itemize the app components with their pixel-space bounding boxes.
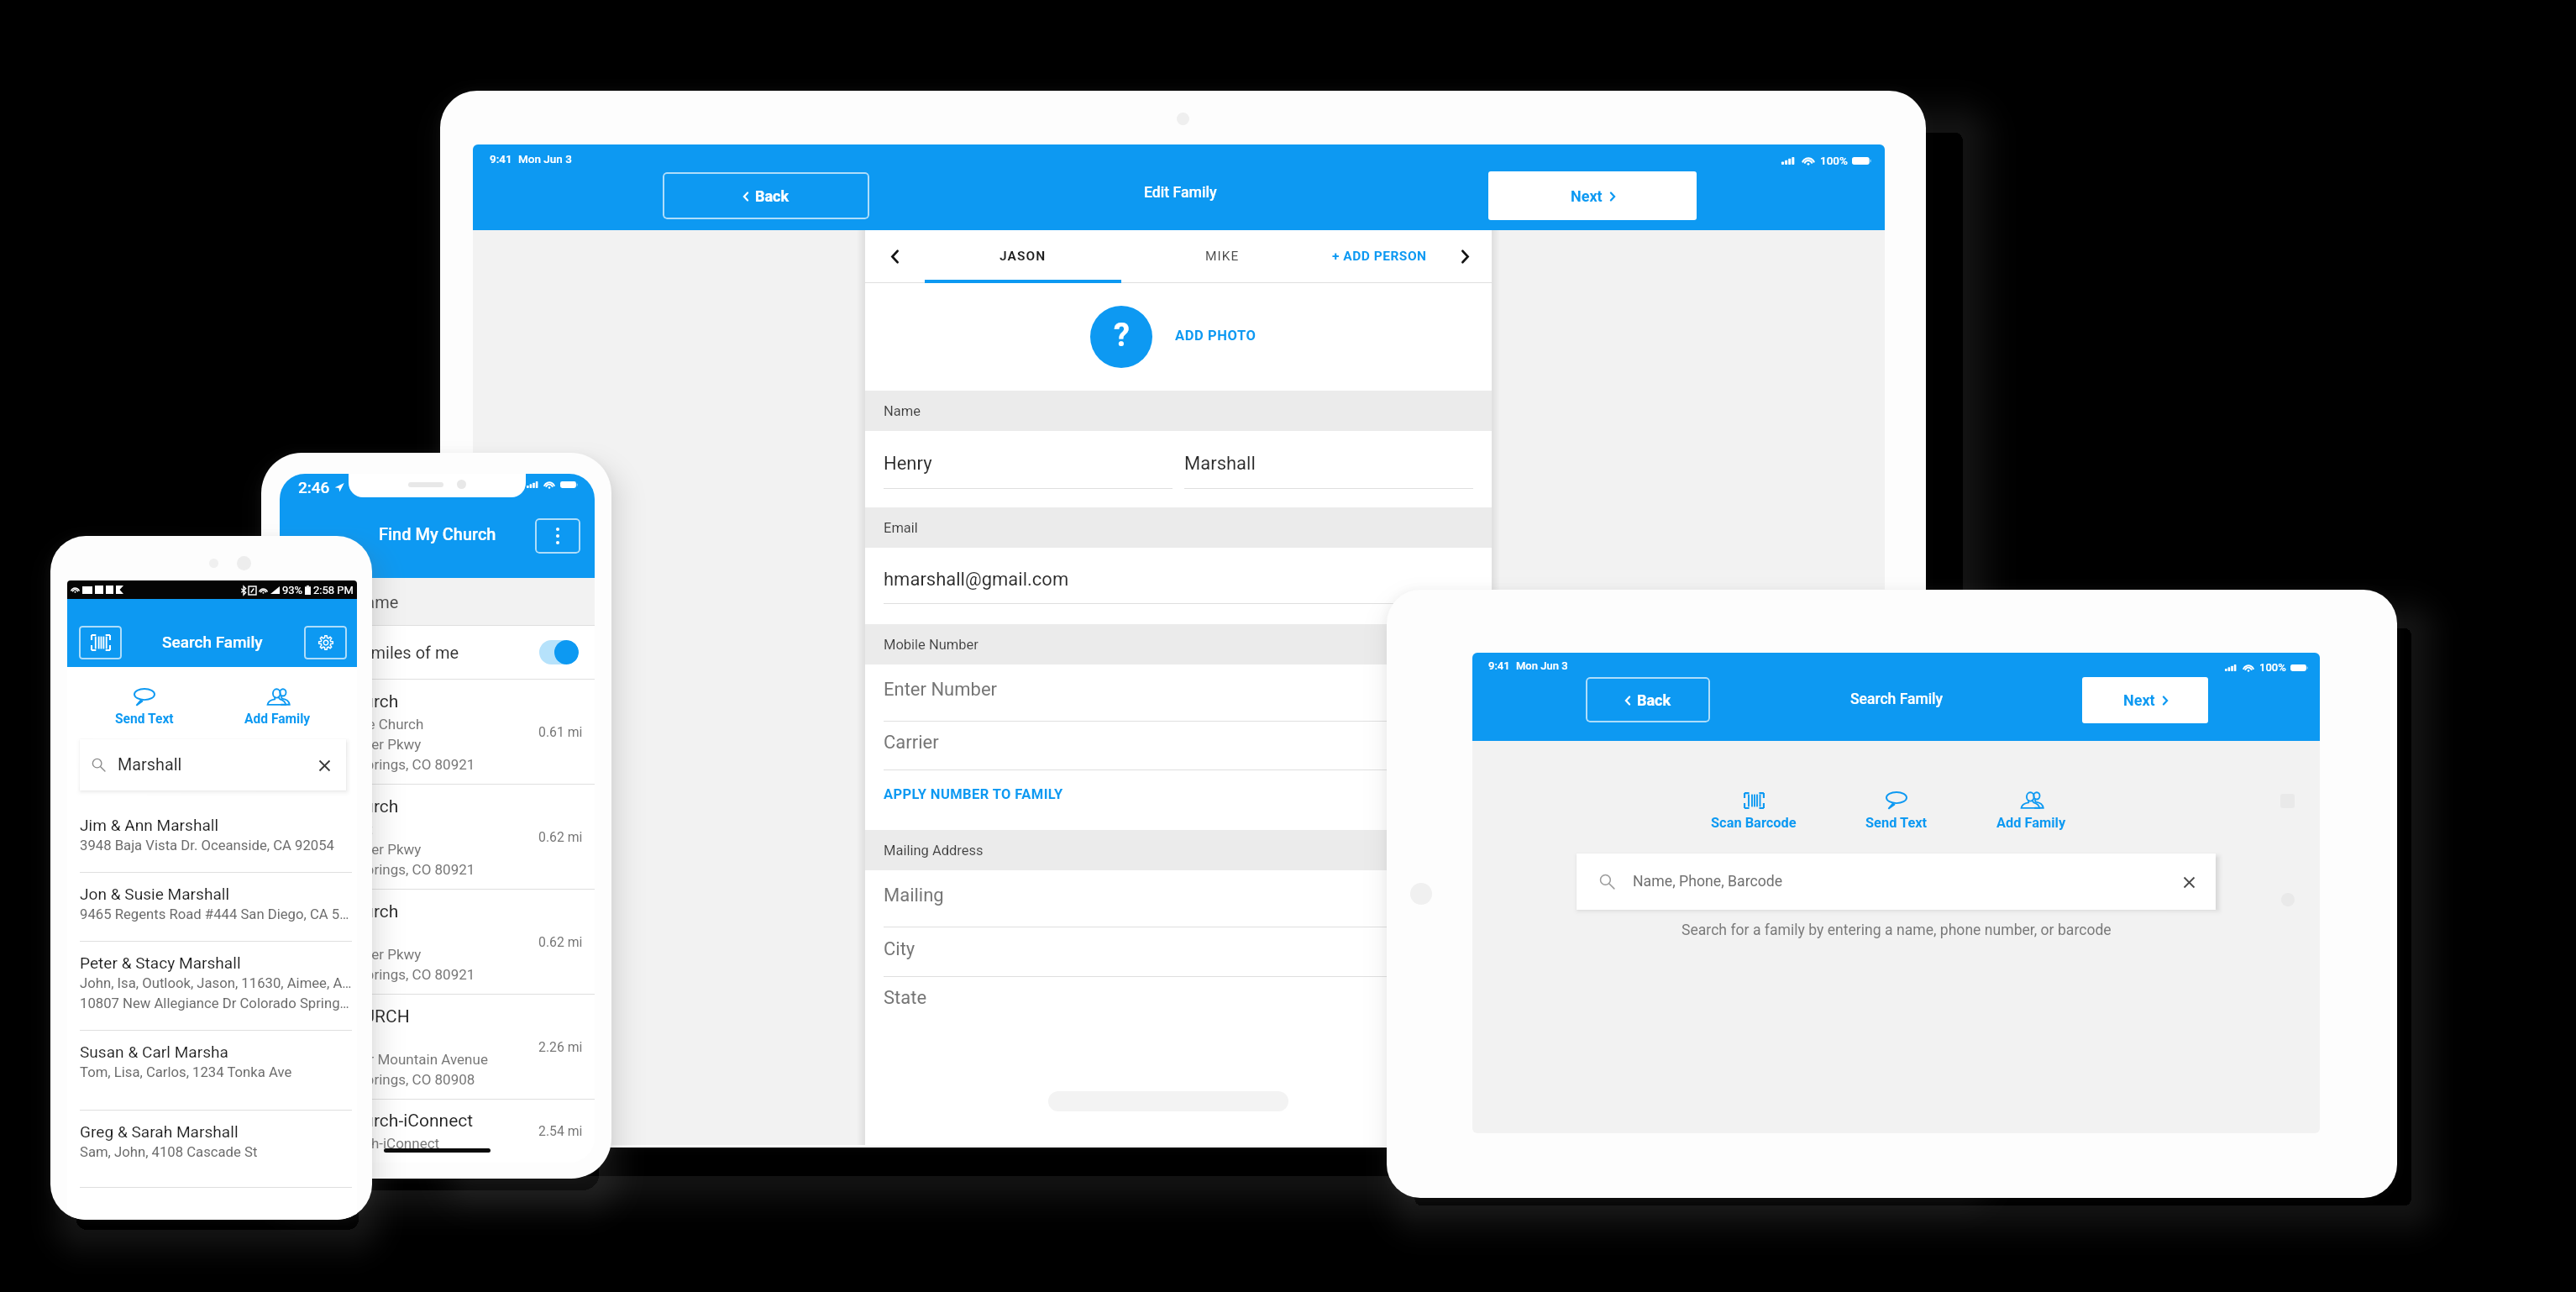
staticText: MIKE [1205, 249, 1240, 264]
staticText: Within 30 miles of me [296, 643, 459, 662]
staticText: 2:46 [298, 478, 330, 496]
staticText: JASON [999, 249, 1047, 264]
button[interactable]: Greg & Sarah Marshall [67, 1111, 357, 1188]
staticText: Search Family [162, 633, 263, 651]
staticText: Hope Church [296, 901, 399, 922]
staticText: + ADD PERSON [1332, 249, 1427, 264]
staticText: Henry [884, 453, 932, 475]
button[interactable]: Add Family [1990, 789, 2073, 833]
staticText: Greg & Sarah Marshall [80, 1122, 239, 1141]
staticText: Sam, John, 4108 Cascade St [80, 1144, 352, 1161]
button[interactable]: Next [2082, 677, 2208, 723]
staticText: Susan & Carl Marsha [80, 1043, 228, 1061]
staticText: Tom, Lisa, Carlos, 1234 Tonka Ave [80, 1064, 352, 1081]
staticText: Name, Phone, Barcode [1633, 873, 1783, 890]
staticText: Mon Jun 3 [518, 152, 572, 165]
button[interactable]: Susan & Carl Marsha [67, 1031, 357, 1111]
staticText: Next [1571, 187, 1603, 205]
staticText: The Chinese Church [296, 716, 424, 733]
staticText: Friday Night [296, 821, 373, 838]
staticText: 0.61 mi [538, 724, 583, 740]
button[interactable]: Add Family [238, 685, 317, 729]
staticText: Add Family [1996, 815, 2066, 831]
staticText: State [884, 987, 927, 1009]
button[interactable]: Marshall [80, 739, 346, 790]
button[interactable]: Send Text [1859, 789, 1934, 833]
button[interactable]: Scan barcode [79, 626, 122, 659]
staticText: Send Text [1865, 815, 1928, 831]
staticText: Mobile Number [884, 637, 978, 653]
button[interactable]: JASON [925, 230, 1121, 282]
staticText: Youth [296, 926, 333, 943]
button[interactable]: Peter & Stacy Marshall [67, 942, 357, 1031]
staticText: Mailing Address [884, 843, 984, 859]
staticText: Colorado Springs, CO 80908 [296, 1071, 475, 1088]
button[interactable]: Add photo [1090, 306, 1152, 368]
staticText: Marshall [1184, 453, 1256, 475]
staticText: Hope Church [296, 796, 399, 817]
button[interactable]: Clear [2177, 870, 2201, 894]
staticText: City [884, 938, 916, 960]
button[interactable]: Name, Phone, Barcode [1577, 853, 2216, 910]
staticText: Hope Church-iConnect [296, 1111, 474, 1132]
staticText: 3948 Baja Vista Dr. Oceanside, CA 92054 [80, 838, 352, 854]
staticText: NEW CHURCH [296, 1006, 410, 1027]
button[interactable]: + ADD PERSON [1312, 230, 1446, 282]
button[interactable]: MIKE [1134, 230, 1310, 282]
staticText: 9815 Voyager Pkwy [296, 736, 422, 753]
staticText: Scan Barcode [1711, 815, 1797, 831]
staticText: 93% [282, 584, 303, 596]
staticText: Back [1637, 691, 1671, 709]
button[interactable]: Scan Barcode [1704, 789, 1803, 833]
button[interactable]: Clear search [312, 754, 336, 777]
staticText: Carrier [884, 732, 939, 754]
staticText: 0.62 mi [538, 934, 583, 950]
staticText: John, Isa, Outlook, Jason, 11630, Aimee,… [80, 975, 352, 992]
staticText: 2.54 mi [538, 1123, 583, 1139]
staticText: Jim & Ann Marshall [80, 816, 219, 834]
staticText: 9815 Voyager Pkwy [296, 841, 422, 858]
button[interactable]: Send Text [108, 685, 181, 729]
button[interactable]: Previous person [875, 234, 914, 280]
staticText: Back [755, 187, 790, 205]
staticText: APPLY NUMBER TO FAMILY [884, 786, 1063, 802]
button[interactable]: APPLY NUMBER TO FAMILY [865, 770, 1492, 830]
staticText: 2.26 mi [538, 1039, 583, 1055]
staticText: Church Name [296, 592, 399, 612]
staticText: hmarshall@gmail.com [884, 569, 1069, 591]
staticText: Edit Family [1144, 184, 1217, 202]
staticText: Colorado Springs, CO 80921 [296, 966, 475, 983]
staticText: Colorado Springs, CO 80921 [296, 861, 475, 878]
button[interactable]: Next [1488, 171, 1697, 220]
staticText: Colorado Springs, CO 80921 [296, 756, 475, 773]
staticText: Search Family [1850, 691, 1944, 708]
staticText: Marshall [118, 755, 182, 775]
button[interactable]: Within 30 miles toggle [539, 640, 579, 664]
staticText: Hope Church-iConnect [296, 1135, 440, 1152]
button[interactable]: Next person [1446, 234, 1483, 280]
staticText: ? [1114, 317, 1130, 355]
staticText: Find My Church [379, 524, 496, 544]
staticText: Name [884, 403, 921, 419]
staticText: 9:41 [1488, 659, 1510, 672]
staticText: Jon & Susie Marshall [80, 885, 230, 903]
staticText: Email [884, 520, 918, 536]
staticText: Add Family [244, 712, 311, 727]
button[interactable]: Jim & Ann Marshall [67, 804, 357, 873]
button[interactable]: ADD PHOTO [1175, 328, 1257, 344]
staticText: Mailing [884, 885, 944, 906]
staticText: 100% [1820, 154, 1848, 167]
staticText: Search for a family by entering a name, … [1681, 922, 2112, 939]
staticText: 10807 New Allegiance Dr Colorado Springs… [80, 995, 352, 1012]
staticText: 9465 Regents Road #444 San Diego, CA 54… [80, 906, 352, 923]
staticText: 9815 Voyager Pkwy [296, 946, 422, 963]
button[interactable]: More options [535, 518, 580, 554]
staticText: 3450 Center Mountain Avenue [296, 1051, 488, 1068]
button[interactable]: Back [1586, 677, 1710, 722]
button[interactable]: Jon & Susie Marshall [67, 873, 357, 942]
button[interactable]: Back [663, 172, 869, 219]
button[interactable]: Settings [304, 626, 347, 659]
staticText: Mon Jun 3 [1516, 659, 1568, 672]
staticText: Send Text [115, 712, 174, 727]
